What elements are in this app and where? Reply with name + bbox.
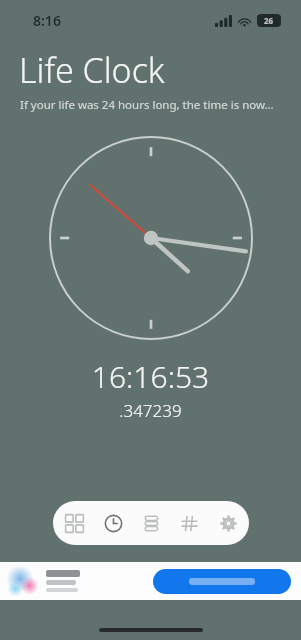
button[interactable]: Numbers <box>172 501 206 545</box>
staticText: 26 <box>264 15 274 26</box>
button[interactable]: Advertisement <box>0 562 301 600</box>
staticText: 16:16:53 <box>0 356 301 397</box>
button[interactable]: Layers <box>134 501 168 545</box>
staticText: .347239 <box>0 399 301 422</box>
staticText: Life Clock <box>19 47 165 93</box>
button[interactable]: Settings <box>211 501 245 545</box>
button[interactable]: Clock <box>96 501 130 545</box>
button[interactable]: Apps <box>57 501 91 545</box>
staticText: 8:16 <box>33 11 61 30</box>
button[interactable]: Install <box>153 569 291 594</box>
staticText: If your life was 24 hours long, the time… <box>20 97 274 113</box>
